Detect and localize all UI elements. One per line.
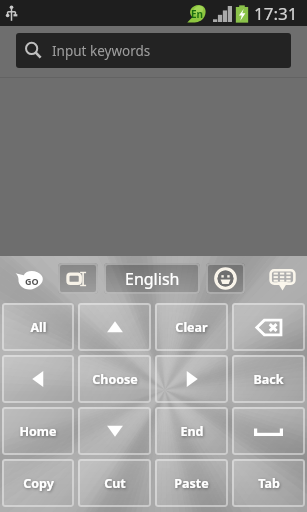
button[interactable]: Clear xyxy=(155,303,228,351)
button[interactable]: right xyxy=(155,355,228,403)
staticText: English xyxy=(125,268,180,290)
staticText: Home xyxy=(19,423,57,440)
button[interactable]: space xyxy=(232,407,305,455)
staticText: En xyxy=(191,7,204,21)
button[interactable]: End xyxy=(155,407,228,455)
button[interactable]: Input keywords xyxy=(16,33,291,68)
button[interactable]: Back xyxy=(232,355,305,403)
staticText: GO xyxy=(25,275,39,287)
button[interactable]: Choose xyxy=(78,355,151,403)
button[interactable]: Hide keyboard xyxy=(257,258,307,300)
staticText: All xyxy=(30,319,47,336)
staticText: Choose xyxy=(92,371,138,388)
button[interactable]: Switch input method xyxy=(58,263,98,294)
button[interactable]: Tab xyxy=(232,459,305,507)
button[interactable]: Emoji xyxy=(206,263,245,294)
staticText: Back xyxy=(253,371,284,388)
button[interactable]: down xyxy=(78,407,151,455)
button[interactable]: up xyxy=(78,303,151,351)
staticText: Tab xyxy=(258,475,280,492)
button[interactable]: Copy xyxy=(2,459,74,507)
button[interactable]: Paste xyxy=(155,459,228,507)
staticText: Copy xyxy=(23,475,54,492)
button[interactable]: GO Keyboard xyxy=(0,258,58,300)
staticText: End xyxy=(180,423,204,440)
staticText: Paste xyxy=(174,475,209,492)
staticText: 17:31 xyxy=(254,2,298,25)
button[interactable]: Home xyxy=(2,407,74,455)
staticText: Clear xyxy=(175,319,208,336)
staticText: Input keywords xyxy=(52,42,151,60)
staticText: Cut xyxy=(104,475,126,492)
button[interactable]: left xyxy=(2,355,74,403)
button[interactable]: Cut xyxy=(78,459,151,507)
button[interactable]: English xyxy=(104,263,200,294)
button[interactable]: del xyxy=(232,303,305,351)
button[interactable]: All xyxy=(2,303,74,351)
